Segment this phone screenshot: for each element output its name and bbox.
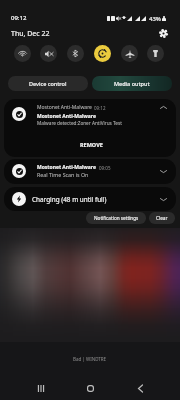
- button[interactable]: REMOVE: [71, 139, 111, 150]
- button[interactable]: Quick setting: [67, 45, 84, 62]
- other: Collapse: [159, 103, 168, 112]
- button[interactable]: Clear: [149, 212, 175, 224]
- staticText: Bad | WINDTRE: [73, 356, 107, 362]
- staticText: 09:12: [94, 105, 106, 111]
- staticText: 09:12: [11, 14, 27, 22]
- button[interactable]: Quick setting: [94, 45, 111, 62]
- other: Expand: [159, 195, 168, 204]
- button[interactable]: Settings: [155, 25, 171, 41]
- button[interactable]: Notification settings: [86, 212, 146, 224]
- staticText: Notification settings: [94, 215, 139, 221]
- button[interactable]: Charging (48 m until full): [4, 187, 176, 211]
- button[interactable]: Mostonet Anti-Malware: [4, 159, 176, 184]
- staticText: Thu, Dec 22: [11, 29, 50, 39]
- button[interactable]: Quick setting: [14, 45, 31, 62]
- staticText: Clear: [156, 215, 168, 221]
- staticText: Mostonet Anti-Malware: [37, 164, 96, 171]
- button[interactable]: Device control: [8, 76, 88, 91]
- button[interactable]: Recents: [28, 376, 54, 400]
- staticText: Malware detected:Zoner AntiVirus Test: [37, 120, 122, 126]
- button[interactable]: Media output: [92, 76, 172, 91]
- staticText: Media output: [114, 80, 150, 87]
- button[interactable]: Home: [77, 376, 103, 400]
- button[interactable]: Quick setting: [121, 45, 138, 62]
- other: Expand: [159, 167, 168, 176]
- button[interactable]: Quick setting: [40, 45, 57, 62]
- staticText: REMOVE: [80, 141, 103, 148]
- staticText: Real Time Scan is On: [37, 171, 89, 178]
- staticText: Device control: [29, 80, 67, 87]
- button[interactable]: Quick setting: [147, 45, 164, 62]
- staticText: 09:05: [99, 165, 111, 171]
- staticText: Mostonet Anti-Malware: [37, 104, 92, 111]
- staticText: Mostonet Anti-Malware: [37, 113, 96, 120]
- staticText: 43%: [149, 15, 161, 21]
- button[interactable]: Back: [127, 376, 153, 400]
- button[interactable]: Mostonet Anti-Malware: [4, 99, 176, 157]
- staticText: Charging (48 m until full): [32, 195, 107, 204]
